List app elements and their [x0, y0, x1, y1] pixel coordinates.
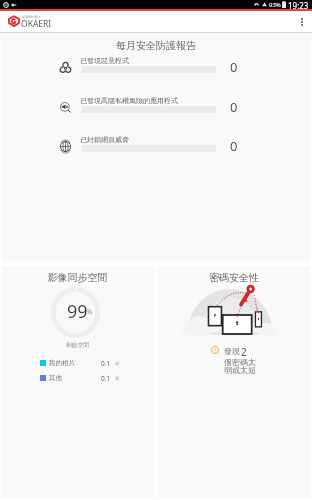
staticText: 保護您的家人 [22, 15, 42, 19]
staticText: 每月安全防護報告 [1, 39, 311, 52]
staticText: 99 [67, 299, 88, 324]
button[interactable]: 已發現惡意程式 [1, 54, 311, 84]
staticText: 發現 [224, 346, 240, 356]
staticText: 19:23 [288, 0, 309, 9]
staticText: 密碼安全性 [157, 271, 311, 284]
staticText: 已封鎖網頁威脅 [80, 135, 129, 144]
staticText: 影像同步空間 [1, 271, 154, 284]
staticText: 0 [230, 98, 238, 116]
staticText: 剩餘空間 [1, 341, 154, 348]
staticText: 0 [230, 58, 238, 76]
staticText: 其他 [49, 374, 62, 382]
staticText: ㎇ [115, 361, 120, 367]
staticText: 我的相片 [49, 359, 75, 367]
staticText: ㎇ [115, 376, 120, 382]
staticText: 已發現惡意程式 [80, 56, 129, 65]
button[interactable]: 已封鎖網頁威脅 [1, 133, 311, 163]
button[interactable]: 已發現高隱私權風險的應用程式 [1, 94, 311, 124]
staticText: 個密碼太 [224, 357, 256, 367]
staticText: 0.1 [101, 359, 111, 368]
staticText: 弱或太短 [224, 365, 256, 375]
staticText: 0.1 [101, 374, 111, 383]
staticText: % [86, 306, 93, 316]
button[interactable]: More options [292, 12, 312, 32]
staticText: 已發現高隱私權風險的應用程式 [80, 96, 178, 105]
staticText: 2 [241, 345, 247, 359]
staticText: 0 [230, 137, 238, 155]
staticText: 93% [269, 1, 281, 9]
staticText: OKAERI [21, 18, 52, 30]
